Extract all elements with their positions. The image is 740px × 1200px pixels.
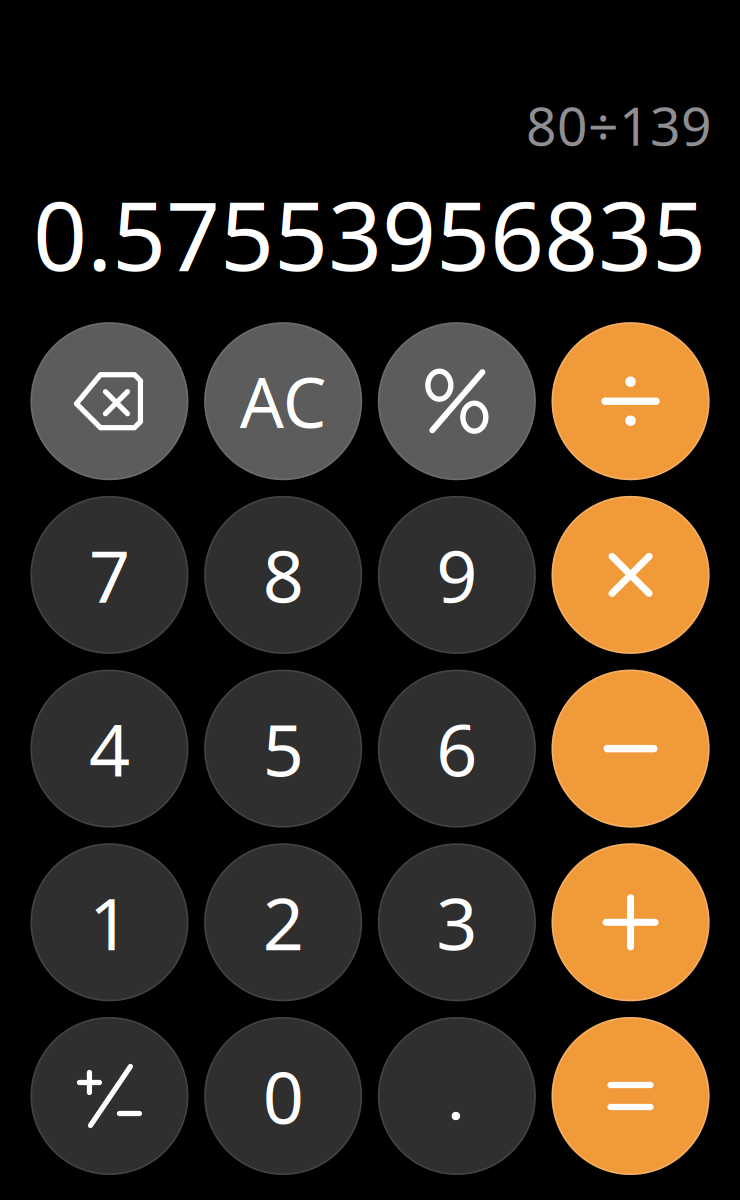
button[interactable]: 1	[30, 843, 188, 1001]
staticText: 5	[263, 701, 304, 796]
button[interactable]: 5	[204, 670, 362, 828]
button[interactable]: Minus	[551, 670, 709, 828]
staticText: 0.57553956835	[33, 171, 706, 297]
button[interactable]: Percent	[378, 322, 536, 480]
staticText: 2	[263, 874, 304, 970]
staticText: 6	[436, 701, 477, 796]
button[interactable]: 8	[204, 496, 362, 654]
button[interactable]: AC	[204, 322, 362, 480]
button[interactable]: Equals	[551, 1017, 709, 1175]
button[interactable]: 4	[30, 670, 188, 828]
staticText: 3	[436, 874, 477, 970]
button[interactable]: 0	[204, 1017, 362, 1175]
button[interactable]: Toggle sign	[30, 1017, 188, 1175]
button[interactable]: 6	[378, 670, 536, 828]
button[interactable]: 7	[30, 496, 188, 654]
staticText: 9	[436, 527, 477, 623]
button[interactable]: Decimal point	[378, 1017, 536, 1175]
button[interactable]: 3	[378, 843, 536, 1001]
staticText: 7	[89, 527, 130, 623]
staticText: 0	[263, 1048, 304, 1144]
staticText: 1	[89, 874, 130, 970]
staticText: 4	[89, 701, 130, 796]
button[interactable]: Divide	[551, 322, 709, 480]
button[interactable]: 9	[378, 496, 536, 654]
button[interactable]: Plus	[551, 843, 709, 1001]
button[interactable]: 2	[204, 843, 362, 1001]
button[interactable]: Delete	[30, 322, 188, 480]
button[interactable]: Multiply	[551, 496, 709, 654]
staticText: 80÷139	[526, 90, 712, 160]
staticText: 8	[263, 527, 304, 623]
staticText: AC	[240, 355, 327, 447]
